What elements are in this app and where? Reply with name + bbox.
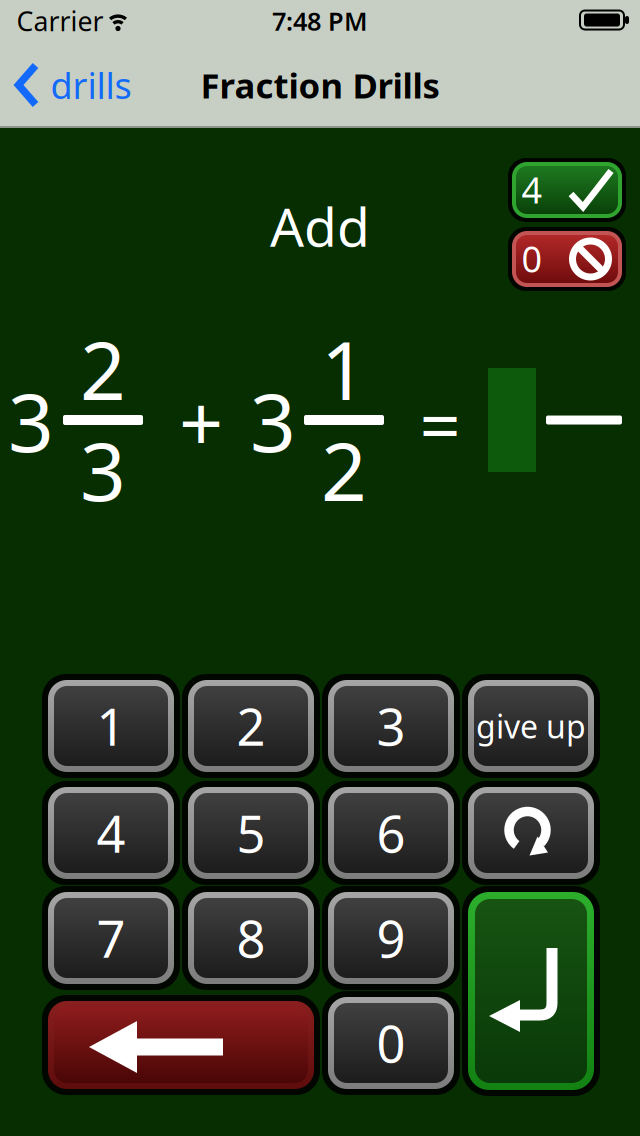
button[interactable]: give up [462, 674, 600, 778]
staticText: 1 [321, 316, 367, 422]
staticText: 5 [236, 799, 265, 867]
staticText: Fraction Drills [200, 62, 439, 108]
staticText: 7:48 PM [272, 4, 368, 38]
staticText: 2 [236, 692, 265, 760]
staticText: 3 [8, 368, 54, 474]
staticText: Carrier [16, 3, 103, 39]
staticText: 6 [376, 799, 405, 867]
staticText: give up [476, 705, 586, 747]
staticText: 0 [376, 1009, 405, 1077]
staticText: drills [50, 61, 131, 109]
staticText: 4 [96, 799, 125, 867]
staticText: Add [270, 191, 370, 261]
staticText: 3 [80, 417, 126, 523]
button[interactable]: 7 [42, 886, 180, 990]
button[interactable]: 1 [42, 674, 180, 778]
staticText: 0 [521, 235, 542, 282]
staticText: 3 [250, 368, 296, 474]
button[interactable] [462, 886, 600, 1096]
staticText: + [179, 371, 223, 473]
staticText: 7 [96, 904, 125, 972]
button[interactable]: 3 [322, 674, 460, 778]
staticText: 4 [521, 166, 542, 213]
button[interactable]: 0 [322, 991, 460, 1095]
staticText: 9 [376, 904, 405, 972]
staticText: 2 [80, 316, 126, 422]
button[interactable] [462, 781, 600, 885]
staticText: 1 [96, 692, 125, 760]
button[interactable]: drills [14, 61, 131, 109]
staticText: 8 [236, 904, 265, 972]
button[interactable]: 8 [182, 886, 320, 990]
button[interactable]: 5 [182, 781, 320, 885]
button[interactable] [42, 995, 320, 1095]
staticText: = [419, 376, 460, 472]
staticText: 2 [321, 417, 367, 523]
button[interactable]: 2 [182, 674, 320, 778]
staticText: 3 [376, 692, 405, 760]
button[interactable]: 6 [322, 781, 460, 885]
button[interactable]: 9 [322, 886, 460, 990]
button[interactable]: 4 [42, 781, 180, 885]
